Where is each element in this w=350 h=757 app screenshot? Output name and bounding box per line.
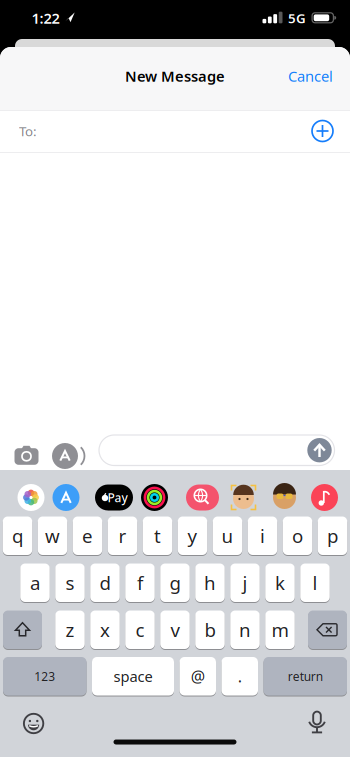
- staticText: w: [45, 523, 60, 548]
- staticText: New Message: [125, 66, 225, 86]
- staticText: t: [154, 523, 161, 548]
- staticText: a: [30, 570, 40, 595]
- button[interactable]: g: [160, 563, 190, 602]
- button[interactable]: [307, 438, 332, 462]
- button[interactable]: [52, 483, 80, 511]
- staticText: d: [99, 570, 110, 595]
- button[interactable]: z: [55, 610, 85, 649]
- button[interactable]: y: [178, 516, 207, 555]
- button[interactable]: [3, 610, 42, 649]
- button[interactable]: x: [90, 610, 120, 649]
- staticText: Cancel: [288, 66, 333, 86]
- staticText: p: [327, 523, 338, 548]
- button[interactable]: space: [92, 657, 174, 695]
- staticText: space: [113, 666, 152, 686]
- button[interactable]: v: [160, 610, 190, 649]
- button[interactable]: r: [108, 516, 137, 555]
- button[interactable]: .: [221, 657, 258, 695]
- button[interactable]: [19, 708, 49, 738]
- button[interactable]: [308, 610, 347, 649]
- button[interactable]: @: [179, 657, 216, 695]
- button[interactable]: [140, 483, 168, 511]
- button[interactable]: a: [20, 563, 50, 602]
- button[interactable]: d: [90, 563, 120, 602]
- staticText: o: [292, 523, 303, 548]
- button[interactable]: h: [195, 563, 225, 602]
- button[interactable]: [302, 707, 332, 737]
- staticText: Pay: [107, 490, 127, 506]
- button[interactable]: n: [230, 610, 260, 649]
- staticText: b: [204, 617, 215, 642]
- button[interactable]: q: [3, 516, 32, 555]
- button[interactable]: [9, 440, 43, 470]
- button[interactable]: 123: [3, 657, 86, 695]
- staticText: q: [12, 523, 23, 548]
- staticText: return: [288, 668, 323, 684]
- staticText: h: [204, 570, 216, 595]
- button[interactable]: p: [318, 516, 347, 555]
- button[interactable]: [50, 441, 90, 471]
- staticText: r: [118, 523, 126, 548]
- staticText: y: [187, 523, 197, 548]
- button[interactable]: [310, 483, 338, 511]
- button[interactable]: [308, 116, 337, 145]
- staticText: s: [65, 570, 74, 595]
- staticText: .: [238, 666, 242, 687]
- button[interactable]: s: [55, 563, 85, 602]
- button[interactable]: return: [263, 657, 347, 695]
- staticText: c: [135, 617, 144, 642]
- staticText: e: [82, 523, 93, 548]
- button[interactable]: j: [230, 563, 260, 602]
- button[interactable]: o: [283, 516, 312, 555]
- staticText: v: [170, 617, 179, 642]
- staticText: f: [137, 570, 143, 595]
- button[interactable]: [17, 483, 45, 511]
- button[interactable]: l: [300, 563, 330, 602]
- button[interactable]: [182, 483, 222, 511]
- staticText: u: [221, 523, 233, 548]
- staticText: z: [65, 617, 74, 642]
- button[interactable]: Pay: [94, 483, 134, 511]
- staticText: k: [275, 570, 285, 595]
- button[interactable]: t: [143, 516, 172, 555]
- staticText: 123: [34, 668, 55, 684]
- button[interactable]: w: [38, 516, 67, 555]
- button[interactable]: e: [73, 516, 102, 555]
- button[interactable]: c: [125, 610, 155, 649]
- button[interactable]: u: [213, 516, 242, 555]
- staticText: i: [260, 523, 265, 548]
- staticText: x: [100, 617, 110, 642]
- button[interactable]: b: [195, 610, 225, 649]
- staticText: j: [242, 570, 247, 595]
- button[interactable]: [229, 483, 257, 511]
- button[interactable]: Cancel: [288, 66, 333, 86]
- staticText: l: [312, 570, 317, 595]
- staticText: n: [239, 617, 251, 642]
- button[interactable]: [270, 483, 298, 511]
- button[interactable]: m: [265, 610, 295, 649]
- staticText: 1:22: [31, 8, 59, 28]
- button[interactable]: [98, 434, 335, 466]
- button[interactable]: k: [265, 563, 295, 602]
- staticText: g: [169, 570, 180, 595]
- button[interactable]: f: [125, 563, 155, 602]
- button[interactable]: i: [248, 516, 277, 555]
- staticText: m: [271, 617, 288, 642]
- staticText: @: [191, 666, 205, 687]
- staticText: To:: [19, 122, 37, 140]
- staticText: 5G: [288, 9, 306, 27]
